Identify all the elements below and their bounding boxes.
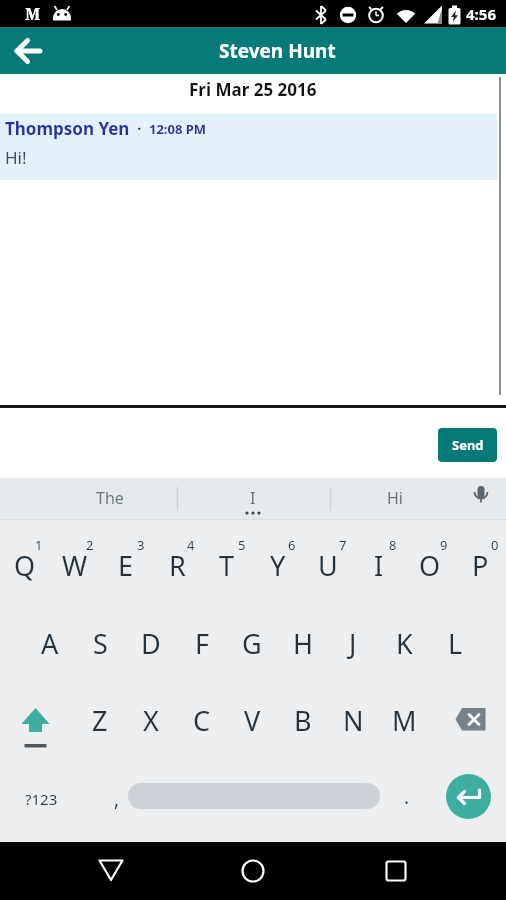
staticText: . xyxy=(404,784,410,810)
staticText: I xyxy=(250,487,256,509)
staticText: G xyxy=(242,625,262,662)
staticText: P xyxy=(472,547,489,584)
staticText: 1 xyxy=(35,536,43,552)
button[interactable]: T xyxy=(202,530,252,600)
button[interactable]: Send xyxy=(438,428,497,462)
staticText: D xyxy=(141,625,161,662)
staticText: V xyxy=(244,702,261,739)
staticText: Y xyxy=(270,547,286,584)
staticText: 0 xyxy=(491,536,499,552)
button[interactable] xyxy=(446,774,491,819)
staticText: S xyxy=(93,625,108,662)
button[interactable]: L xyxy=(430,608,480,678)
staticText: Thompson Yen xyxy=(5,117,130,140)
button[interactable]: Q xyxy=(0,530,50,600)
button[interactable]: B xyxy=(278,685,328,755)
staticText: L xyxy=(448,625,463,662)
staticText: T xyxy=(219,547,235,584)
staticText: E xyxy=(118,547,134,584)
button[interactable]: P xyxy=(455,530,505,600)
staticText: Z xyxy=(92,702,108,739)
button[interactable] xyxy=(10,690,62,752)
staticText: The xyxy=(96,487,124,509)
staticText: 7 xyxy=(339,536,347,552)
button[interactable]: S xyxy=(75,608,125,678)
staticText: Hi xyxy=(387,487,403,509)
button[interactable]: R xyxy=(152,530,202,600)
button[interactable] xyxy=(229,847,277,895)
staticText: O xyxy=(419,547,441,584)
staticText: X xyxy=(143,702,159,739)
button[interactable]: . xyxy=(392,772,422,822)
staticText: I xyxy=(374,547,384,584)
button[interactable]: Hi xyxy=(355,478,435,518)
button[interactable]: K xyxy=(379,608,429,678)
staticText: , xyxy=(114,786,120,812)
button[interactable]: A xyxy=(25,608,75,678)
staticText: M xyxy=(392,702,417,739)
staticText: B xyxy=(294,702,312,739)
button[interactable]: H xyxy=(278,608,328,678)
button[interactable]: I xyxy=(213,478,293,518)
staticText: A xyxy=(41,625,59,662)
staticText: F xyxy=(195,625,210,662)
button[interactable]: M xyxy=(379,685,429,755)
button[interactable]: V xyxy=(227,685,277,755)
staticText: J xyxy=(349,625,357,662)
staticText: U xyxy=(318,547,338,584)
button[interactable]: ?123 xyxy=(14,769,68,829)
button[interactable]: W xyxy=(50,530,100,600)
staticText: Steven Hunt xyxy=(219,38,336,64)
staticText: ?123 xyxy=(25,789,58,809)
button[interactable]: O xyxy=(405,530,455,600)
button[interactable]: Thompson Yen xyxy=(0,114,497,180)
staticText: Q xyxy=(14,547,36,584)
staticText: · xyxy=(130,119,149,138)
staticText: N xyxy=(343,702,364,739)
staticText: M xyxy=(25,3,41,25)
staticText: 8 xyxy=(389,536,397,552)
button[interactable]: D xyxy=(126,608,176,678)
button[interactable]: Y xyxy=(253,530,303,600)
staticText: 3 xyxy=(137,536,145,552)
button[interactable]: G xyxy=(227,608,277,678)
staticText: Hi! xyxy=(5,146,27,169)
button[interactable]: E xyxy=(101,530,151,600)
button[interactable] xyxy=(442,690,494,752)
button[interactable] xyxy=(87,847,135,895)
staticText: 4:56 xyxy=(466,4,496,24)
staticText: W xyxy=(62,547,88,584)
staticText: K xyxy=(396,625,413,662)
staticText: Fri Mar 25 2016 xyxy=(189,78,317,101)
button[interactable]: I xyxy=(354,530,404,600)
staticText: 9 xyxy=(440,536,448,552)
button[interactable]: U xyxy=(303,530,353,600)
button[interactable]: Z xyxy=(75,685,125,755)
staticText: R xyxy=(169,547,186,584)
button[interactable]: N xyxy=(328,685,378,755)
button[interactable]: F xyxy=(177,608,227,678)
staticText: H xyxy=(293,625,314,662)
staticText: 12:08 PM xyxy=(149,120,207,138)
button[interactable] xyxy=(372,847,420,895)
button[interactable]: C xyxy=(177,685,227,755)
staticText: Send xyxy=(452,436,484,454)
button[interactable] xyxy=(0,27,56,74)
button[interactable]: , xyxy=(102,774,132,824)
staticText: 5 xyxy=(238,536,246,552)
button[interactable] xyxy=(128,783,380,809)
staticText: 2 xyxy=(86,536,94,552)
staticText: 6 xyxy=(288,536,296,552)
staticText: C xyxy=(193,702,211,739)
button[interactable]: The xyxy=(70,478,150,518)
button[interactable]: J xyxy=(328,608,378,678)
button[interactable]: X xyxy=(126,685,176,755)
staticText: 4 xyxy=(187,536,195,552)
